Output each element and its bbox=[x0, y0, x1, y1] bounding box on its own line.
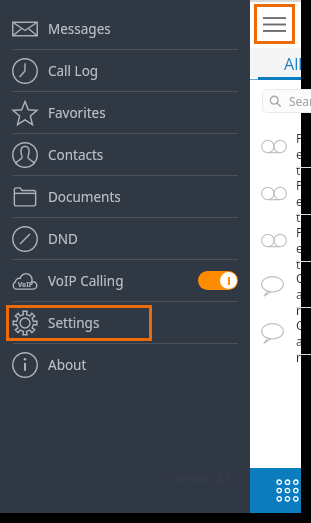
staticText: DND bbox=[48, 230, 78, 248]
staticText: Favorites bbox=[48, 104, 106, 122]
staticText: Search bbox=[289, 93, 311, 109]
button[interactable]: Peter bbox=[0, 121, 301, 168]
button[interactable]: Call Log bbox=[0, 50, 250, 92]
staticText: Peter bbox=[296, 130, 301, 177]
staticText: All bbox=[284, 53, 303, 75]
button[interactable]: Open navigation drawer bbox=[254, 4, 295, 44]
button[interactable]: Dialpad bbox=[0, 468, 301, 513]
staticText: Peter bbox=[296, 177, 301, 224]
button[interactable]: Peter bbox=[0, 168, 301, 215]
button[interactable]: Contacts bbox=[0, 134, 250, 176]
button[interactable]: About bbox=[0, 344, 250, 386]
button[interactable]: Messages bbox=[0, 8, 250, 50]
button[interactable]: VoIP Calling toggle bbox=[198, 271, 238, 290]
staticText: Contacts bbox=[48, 146, 104, 164]
staticText: Carl bbox=[296, 270, 301, 317]
staticText: Peter bbox=[296, 224, 301, 271]
button[interactable]: Peter bbox=[0, 215, 301, 262]
button[interactable]: Search bbox=[262, 89, 311, 113]
button[interactable]: Carl bbox=[0, 308, 301, 355]
button[interactable]: DND bbox=[0, 218, 250, 260]
button[interactable]: Carl bbox=[0, 261, 301, 308]
staticText: Carl bbox=[296, 317, 301, 364]
staticText: Messages bbox=[48, 20, 111, 38]
button[interactable]: All bbox=[252, 48, 301, 80]
staticText: VoIP bbox=[18, 280, 33, 289]
staticText: Settings bbox=[48, 314, 100, 332]
button[interactable]: Settings bbox=[0, 302, 250, 344]
button[interactable]: Documents bbox=[0, 176, 250, 218]
staticText: Documents bbox=[48, 188, 121, 206]
button[interactable]: VoIP bbox=[0, 260, 250, 302]
staticText: VoIP Calling bbox=[48, 272, 124, 290]
staticText: About bbox=[48, 356, 87, 374]
staticText: Call Log bbox=[48, 62, 99, 80]
button[interactable]: Favorites bbox=[0, 92, 250, 134]
